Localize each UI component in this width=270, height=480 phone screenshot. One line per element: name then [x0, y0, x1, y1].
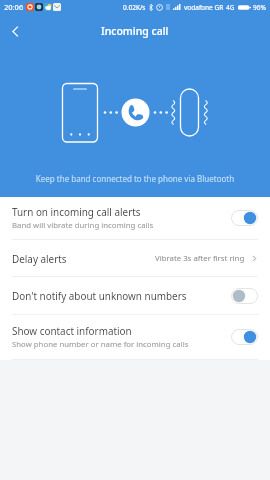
button[interactable]: Show contact information [0, 315, 270, 359]
button[interactable]: Delay alerts [0, 240, 270, 276]
staticText: Show contact information [12, 324, 132, 337]
staticText: 96% [253, 3, 266, 12]
button[interactable]: Toggle on [231, 210, 258, 226]
staticText: Band will vibrate during incoming calls [12, 220, 154, 231]
staticText: Incoming call [101, 24, 169, 38]
staticText: Turn on incoming call alerts [12, 205, 141, 218]
button[interactable]: Toggle off [231, 288, 258, 304]
staticText: Keep the band connected to the phone via… [0, 173, 270, 184]
button[interactable]: Back [0, 16, 30, 46]
staticText: Delay alerts [12, 252, 67, 265]
staticText: 20:06 [4, 2, 24, 12]
staticText: Show phone number or name for incoming c… [12, 339, 189, 350]
staticText: 0.02K/s [123, 3, 146, 12]
staticText: Don't notify about unknown numbers [12, 289, 187, 302]
staticText: vodafone GR [184, 3, 224, 12]
button[interactable]: Don't notify about unknown numbers [0, 277, 270, 314]
staticText: Vibrate 3s after first ring [155, 253, 245, 264]
button[interactable]: Turn on incoming call alerts [0, 197, 270, 239]
button[interactable]: Toggle on [231, 329, 258, 345]
staticText: 4G [226, 3, 235, 12]
